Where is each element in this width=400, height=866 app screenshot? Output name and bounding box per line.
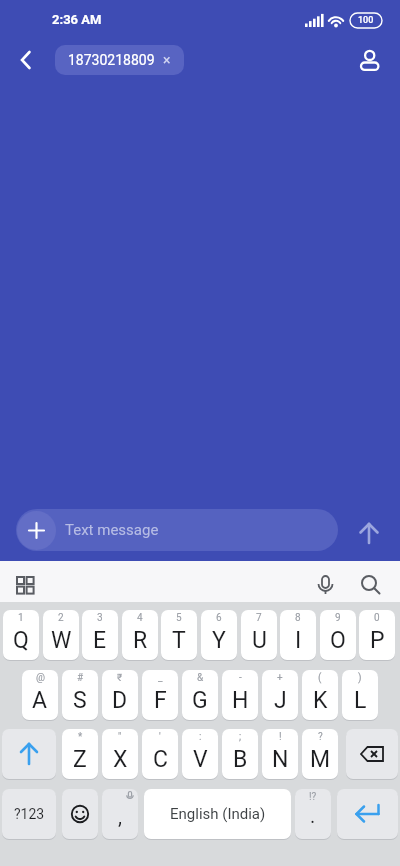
staticText: 100	[358, 15, 374, 26]
staticText: G	[192, 687, 208, 714]
staticText: H	[232, 687, 249, 714]
button[interactable]: 9	[320, 610, 356, 660]
staticText: .	[310, 804, 316, 827]
staticText: 6	[216, 612, 222, 624]
staticText: &	[197, 672, 204, 684]
button[interactable]	[337, 789, 398, 839]
staticText: P	[370, 627, 385, 654]
staticText: English (India)	[170, 805, 266, 823]
button[interactable]: 6	[201, 610, 237, 660]
staticText: +	[277, 672, 283, 684]
staticText: J	[274, 687, 287, 714]
staticText: ×	[163, 52, 171, 68]
staticText: _	[158, 672, 163, 684]
button[interactable]	[10, 44, 46, 80]
button[interactable]: *	[62, 729, 98, 779]
button[interactable]: )	[342, 670, 378, 720]
staticText: 0	[374, 612, 380, 624]
button[interactable]: :	[182, 729, 218, 779]
button[interactable]: -	[222, 670, 258, 720]
button[interactable]: ?	[302, 729, 338, 779]
button[interactable]: ;	[222, 729, 258, 779]
staticText: Z	[73, 746, 87, 773]
button[interactable]: !	[262, 729, 298, 779]
button[interactable]	[9, 569, 42, 602]
button[interactable]: @	[22, 670, 58, 720]
button[interactable]: 7	[241, 610, 277, 660]
staticText: R	[133, 627, 148, 654]
button[interactable]: (	[302, 670, 338, 720]
button[interactable]: 5	[161, 610, 197, 660]
staticText: B	[233, 746, 248, 773]
staticText: L	[354, 687, 367, 714]
button[interactable]: #	[62, 670, 98, 720]
staticText: ₹	[117, 672, 123, 684]
button[interactable]: '	[142, 729, 178, 779]
staticText: V	[193, 746, 208, 773]
button[interactable]: 1	[3, 610, 39, 660]
staticText: U	[252, 627, 267, 654]
staticText: 4	[137, 612, 143, 624]
staticText: -	[239, 672, 242, 684]
button[interactable]: ₹	[102, 670, 138, 720]
button[interactable]: 0	[359, 610, 395, 660]
button[interactable]: ?123	[2, 789, 56, 839]
staticText: *	[78, 731, 83, 743]
button[interactable]: English (India)	[144, 789, 291, 839]
staticText: "	[118, 731, 122, 743]
button[interactable]: 8	[280, 610, 316, 660]
staticText: )	[358, 672, 362, 684]
button[interactable]: ,	[102, 789, 138, 839]
staticText: ?123	[14, 806, 45, 822]
staticText: S	[73, 687, 87, 714]
staticText: 7	[256, 612, 262, 624]
button[interactable]: Text message	[16, 509, 338, 551]
staticText: T	[172, 627, 186, 654]
button[interactable]	[2, 729, 56, 779]
staticText: ?	[318, 731, 323, 743]
button[interactable]: +	[262, 670, 298, 720]
staticText: O	[330, 627, 346, 654]
staticText: #	[77, 672, 84, 684]
button[interactable]: !?	[295, 789, 331, 839]
button[interactable]	[62, 789, 98, 839]
staticText: 2:36 AM	[52, 12, 102, 27]
staticText: 1	[18, 612, 24, 624]
staticText: M	[310, 746, 331, 773]
button[interactable]	[17, 511, 56, 550]
staticText: F	[154, 687, 167, 714]
staticText: (	[318, 672, 322, 684]
button[interactable]: 3	[82, 610, 118, 660]
staticText: I	[295, 627, 302, 654]
staticText: W	[51, 627, 72, 654]
button[interactable]: "	[102, 729, 138, 779]
button[interactable]	[351, 512, 387, 548]
button[interactable]: 2	[43, 610, 79, 660]
staticText: @	[36, 672, 45, 684]
staticText: !	[279, 731, 282, 743]
staticText: 18730218809	[68, 52, 155, 68]
button[interactable]: 18730218809	[55, 45, 184, 75]
button[interactable]	[352, 44, 388, 80]
button[interactable]: 4	[122, 610, 158, 660]
staticText: ,	[118, 805, 122, 828]
staticText: D	[112, 687, 128, 714]
staticText: X	[113, 746, 128, 773]
staticText: '	[159, 731, 161, 743]
staticText: A	[32, 687, 48, 714]
staticText: N	[272, 746, 289, 773]
staticText: K	[313, 687, 328, 714]
staticText: E	[93, 627, 107, 654]
staticText: 5	[176, 612, 182, 624]
staticText: 3	[97, 612, 103, 624]
staticText: Y	[212, 627, 226, 654]
button[interactable]	[354, 569, 387, 602]
staticText: 9	[335, 612, 341, 624]
button[interactable]: _	[142, 670, 178, 720]
button[interactable]: &	[182, 670, 218, 720]
button[interactable]	[309, 569, 342, 602]
staticText: Text message	[65, 521, 159, 539]
staticText: !?	[309, 791, 317, 803]
button[interactable]	[346, 729, 398, 779]
staticText: C	[153, 746, 168, 773]
